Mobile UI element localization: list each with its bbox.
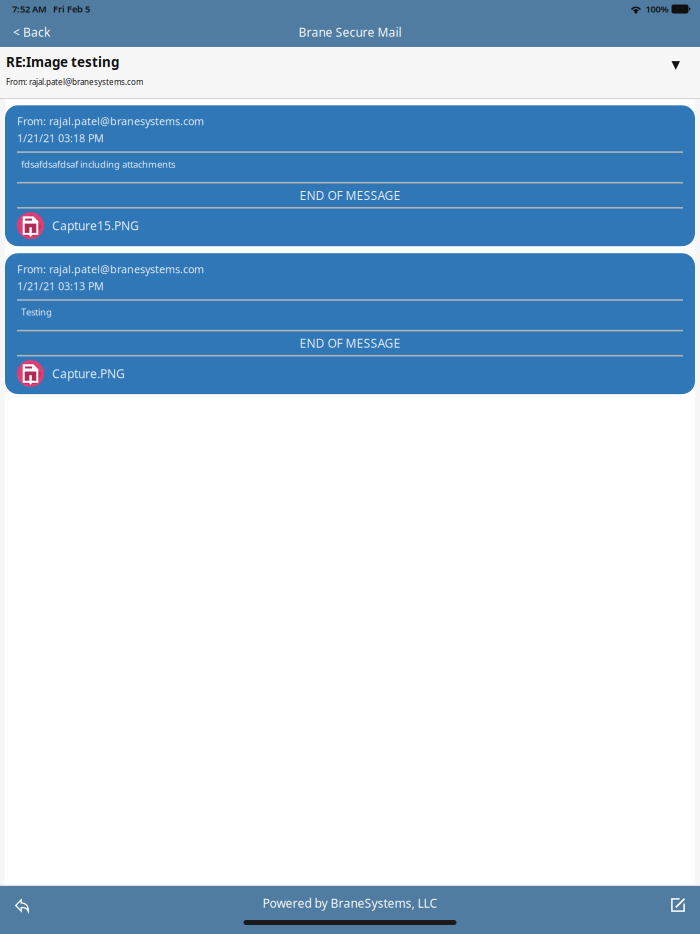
staticText: END OF MESSAGE [299,187,400,203]
button[interactable]: < Back [0,18,60,46]
staticText: Capture15.PNG [52,218,139,233]
staticText: END OF MESSAGE [299,335,400,351]
staticText: Capture.PNG [52,365,125,381]
staticText: 7:52 AM [12,3,47,15]
staticText: RE:Image testing [6,53,119,71]
staticText: < Back [13,24,50,40]
button[interactable]: Compose [656,886,700,920]
staticText: Brane Secure Mail [298,24,401,40]
button[interactable]: Capture15.PNG [5,209,695,246]
staticText: 1/21/21 03:13 PM [17,279,104,293]
button[interactable]: Reply [0,886,44,920]
staticText: From: rajal.patel@branesystems.com [17,262,204,276]
staticText: Testing [21,306,52,318]
staticText: 100% [645,3,668,15]
staticText: Powered by BraneSystems, LLC [262,895,437,911]
staticText: Fri Feb 5 [53,3,90,15]
staticText: From: rajal.patel@branesystems.com [17,114,204,128]
button[interactable]: Capture.PNG [5,356,695,394]
staticText: From: rajal.patel@branesystems.com [6,77,143,87]
staticText: fdsafdsafdsaf including attachments [21,158,175,170]
button[interactable]: Expand message details [659,47,700,98]
staticText: 1/21/21 03:18 PM [17,131,104,145]
